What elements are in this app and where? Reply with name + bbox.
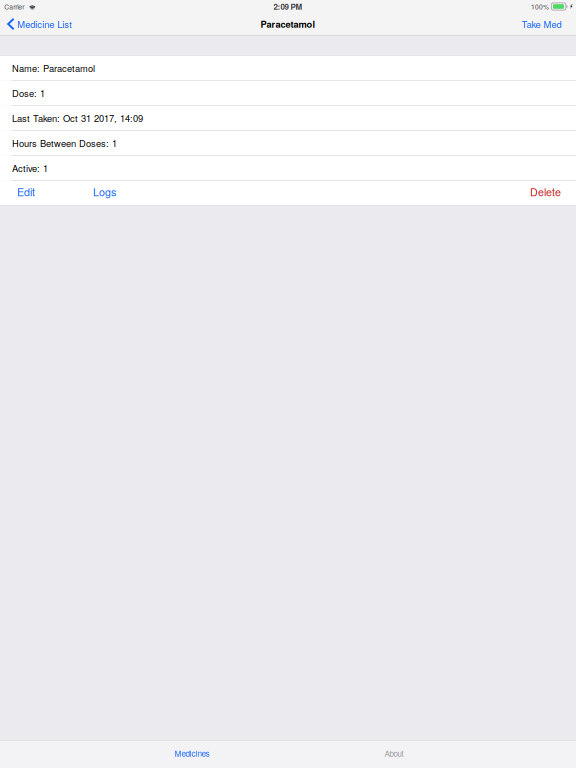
staticText: Hours Between Doses: 1	[12, 136, 117, 150]
button[interactable]: Take Med	[515, 13, 576, 35]
button[interactable]: Logs	[85, 181, 124, 205]
button[interactable]: Medicine List	[0, 13, 78, 35]
staticText: Take Med	[521, 17, 561, 31]
staticText: 2:09 PM	[273, 1, 302, 12]
staticText: Name: Paracetamol	[12, 61, 95, 75]
staticText: About	[384, 748, 403, 759]
staticText: Carrier	[4, 2, 24, 11]
staticText: Dose: 1	[12, 86, 45, 100]
staticText: Medicines	[174, 748, 209, 759]
staticText: Medicine List	[17, 17, 72, 31]
button[interactable]: Edit	[0, 181, 43, 205]
staticText: Last Taken: Oct 31 2017, 14:09	[12, 111, 143, 125]
staticText: 100%	[531, 2, 549, 11]
staticText: Edit	[17, 184, 35, 199]
button[interactable]: Medicines	[91, 741, 293, 768]
staticText: Paracetamol	[260, 17, 315, 31]
staticText: Logs	[93, 184, 116, 199]
staticText: Delete	[530, 184, 561, 199]
button[interactable]: About	[293, 741, 495, 768]
staticText: Active: 1	[12, 161, 48, 175]
button[interactable]: Delete	[522, 181, 576, 205]
